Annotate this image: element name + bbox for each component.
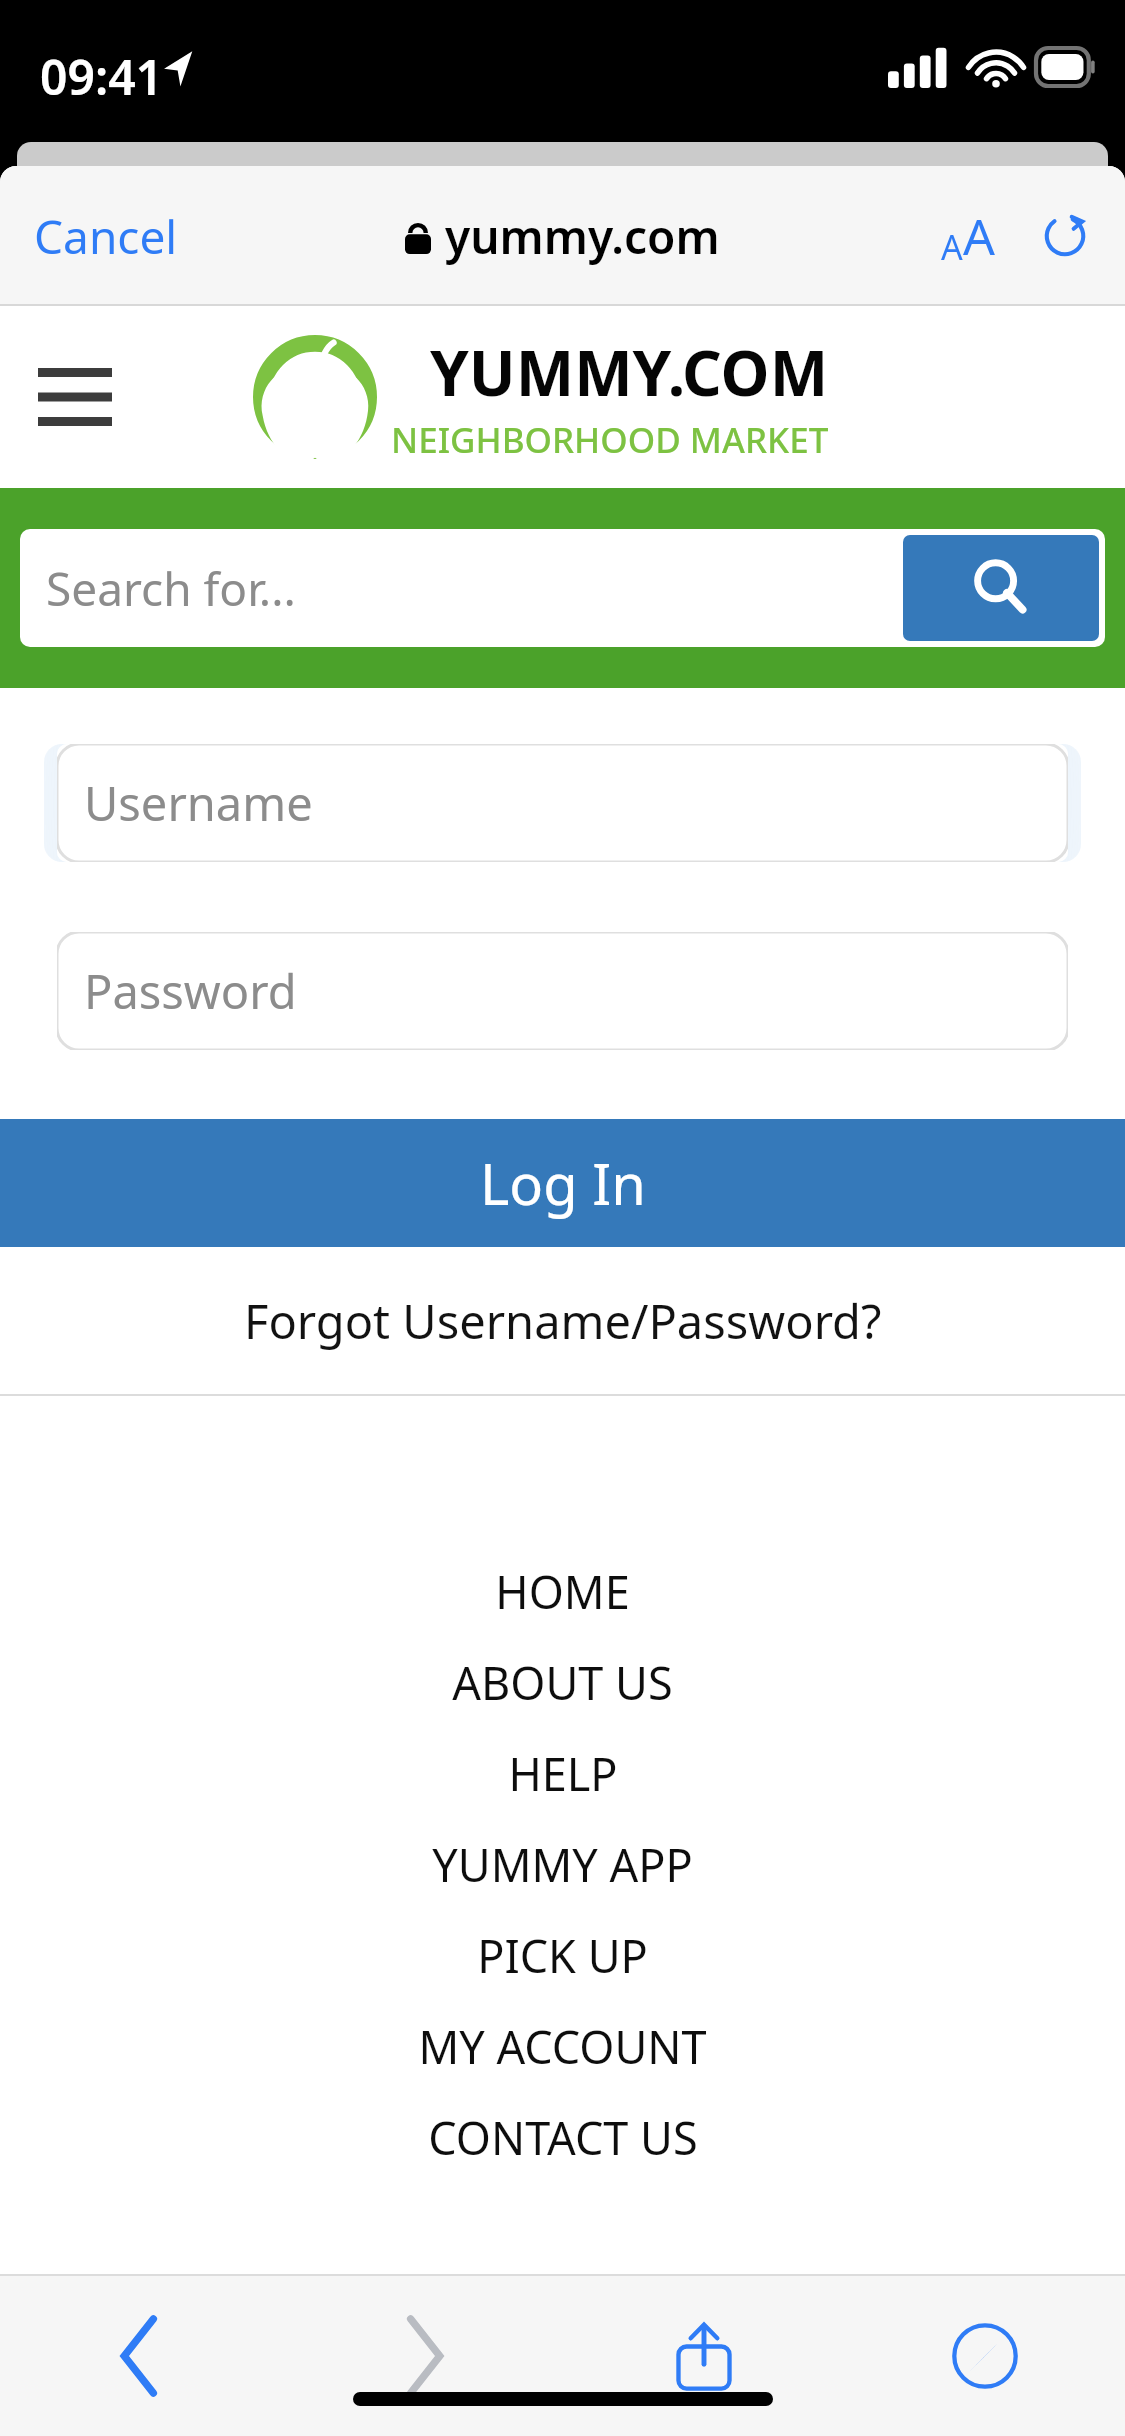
button[interactable]: Reload	[1031, 202, 1099, 270]
button[interactable]: Text size	[931, 192, 1005, 280]
staticText: NEIGHBORHOOD MARKET	[391, 416, 829, 464]
staticText: HELP	[508, 1743, 618, 1804]
button[interactable]: YUMMY APP	[0, 1819, 1125, 1910]
staticText: Forgot Username/Password?	[244, 1289, 882, 1353]
button[interactable]: PICK UP	[0, 1910, 1125, 2001]
staticText: A	[941, 224, 963, 270]
staticText: Password	[84, 959, 297, 1023]
staticText: A	[963, 202, 995, 270]
button[interactable]: ABOUT US	[0, 1637, 1125, 1728]
button[interactable]: Username	[57, 744, 1068, 862]
button[interactable]: Password	[57, 932, 1068, 1050]
staticText: yummy.com	[445, 205, 720, 268]
staticText: YUMMY.COM	[430, 330, 829, 414]
staticText: ABOUT US	[452, 1652, 673, 1713]
button[interactable]: Log In	[0, 1119, 1125, 1247]
staticText: Cancel	[34, 205, 178, 268]
staticText: 09:41	[40, 44, 164, 109]
button[interactable]: Back	[99, 2299, 183, 2413]
button[interactable]: yummy.com	[395, 193, 730, 280]
staticText: MY ACCOUNT	[418, 2016, 707, 2077]
button[interactable]: Menu	[20, 350, 130, 444]
button[interactable]: Forward	[381, 2299, 465, 2413]
staticText: Username	[84, 771, 313, 835]
button[interactable]: Share	[657, 2304, 751, 2408]
button[interactable]: Search for...	[20, 529, 1105, 647]
staticText: YUMMY APP	[432, 1834, 693, 1895]
staticText: PICK UP	[477, 1925, 648, 1986]
staticText: HOME	[495, 1561, 630, 1622]
button[interactable]: HELP	[0, 1728, 1125, 1819]
button[interactable]: Safari	[934, 2305, 1036, 2407]
button[interactable]: HOME	[0, 1546, 1125, 1637]
button[interactable]: Cancel	[30, 191, 182, 282]
button[interactable]: Search	[903, 535, 1099, 641]
staticText: Search for...	[46, 557, 897, 620]
staticText: Log In	[480, 1145, 646, 1221]
button[interactable]: CONTACT US	[0, 2092, 1125, 2183]
staticText: CONTACT US	[428, 2107, 698, 2168]
button[interactable]: Forgot Username/Password?	[224, 1279, 902, 1363]
button[interactable]: MY ACCOUNT	[0, 2001, 1125, 2092]
